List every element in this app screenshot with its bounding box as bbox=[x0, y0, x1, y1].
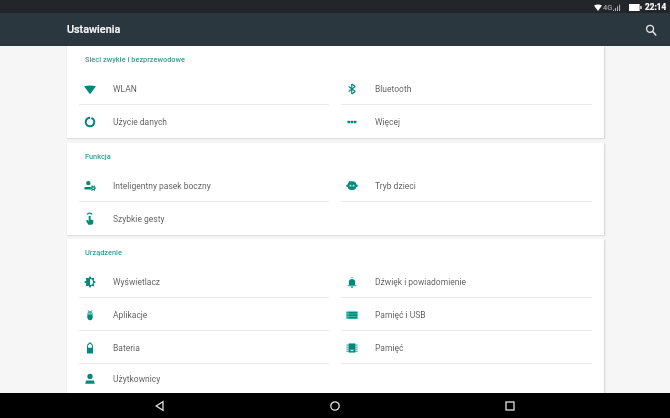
staticText: Funkcja bbox=[85, 152, 111, 161]
button[interactable]: Bluetooth bbox=[335, 72, 604, 105]
staticText: 4G bbox=[603, 3, 613, 12]
button[interactable]: Dźwięk i powiadomienie bbox=[335, 265, 604, 298]
button[interactable]: Użycie danych bbox=[67, 105, 335, 138]
staticText: Bateria bbox=[113, 343, 140, 353]
button[interactable]: Pamięć i USB bbox=[335, 298, 604, 331]
button[interactable]: Więcej bbox=[335, 105, 604, 138]
button[interactable]: Back bbox=[141, 393, 179, 418]
staticText: Inteligentny pasek boczny bbox=[113, 181, 211, 191]
staticText: Użycie danych bbox=[113, 117, 168, 127]
button[interactable]: Wyświetlacz bbox=[67, 265, 335, 298]
staticText: Dźwięk i powiadomienie bbox=[375, 277, 466, 287]
staticText: Użytkownicy bbox=[113, 374, 161, 384]
staticText: Więcej bbox=[375, 117, 401, 127]
button[interactable]: Pamięć bbox=[335, 331, 604, 364]
staticText: WLAN bbox=[113, 84, 137, 94]
staticText: Ustawienia bbox=[67, 23, 121, 36]
staticText: Szybkie gesty bbox=[113, 214, 165, 224]
staticText: Wyświetlacz bbox=[113, 277, 161, 287]
button[interactable]: WLAN bbox=[67, 72, 335, 105]
button[interactable]: Inteligentny pasek boczny bbox=[67, 169, 335, 202]
button[interactable]: Użytkownicy bbox=[67, 364, 335, 393]
staticText: Urządzenie bbox=[85, 248, 122, 257]
button[interactable]: Szybkie gesty bbox=[67, 202, 335, 235]
button[interactable]: Tryb dzieci bbox=[335, 169, 604, 202]
button[interactable]: Search bbox=[636, 15, 666, 45]
staticText: Sieci zwykłe i bezprzewodowe bbox=[85, 55, 186, 64]
button[interactable]: Aplikacje bbox=[67, 298, 335, 331]
staticText: Tryb dzieci bbox=[375, 181, 416, 191]
staticText: Pamięć bbox=[375, 343, 404, 353]
staticText: Bluetooth bbox=[375, 84, 412, 94]
button[interactable]: Recents bbox=[491, 393, 529, 418]
button[interactable]: Bateria bbox=[67, 331, 335, 364]
staticText: Pamięć i USB bbox=[375, 310, 426, 320]
button[interactable]: Home bbox=[316, 393, 354, 418]
staticText: Aplikacje bbox=[113, 310, 148, 320]
staticText: 22:14 bbox=[645, 2, 667, 12]
